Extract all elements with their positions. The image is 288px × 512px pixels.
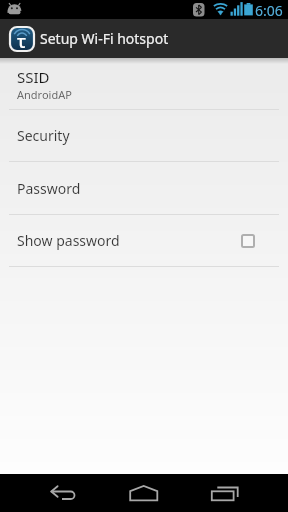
button[interactable] — [96, 474, 192, 512]
button[interactable]: Security — [0, 110, 288, 161]
staticText: 6:06 — [255, 1, 283, 19]
button[interactable]: Show password — [0, 215, 288, 266]
staticText: SSID — [17, 67, 50, 87]
staticText: AndroidAP — [17, 87, 72, 102]
button[interactable]: SSID — [0, 58, 288, 109]
button[interactable]: Password — [0, 162, 288, 214]
button[interactable] — [192, 474, 288, 512]
staticText: Password — [17, 179, 81, 198]
staticText: Setup Wi-Fi hotspot — [40, 29, 169, 48]
staticText: Security — [17, 126, 70, 145]
staticText: τ — [17, 29, 27, 52]
button[interactable] — [0, 474, 96, 512]
staticText: Show password — [17, 231, 241, 250]
